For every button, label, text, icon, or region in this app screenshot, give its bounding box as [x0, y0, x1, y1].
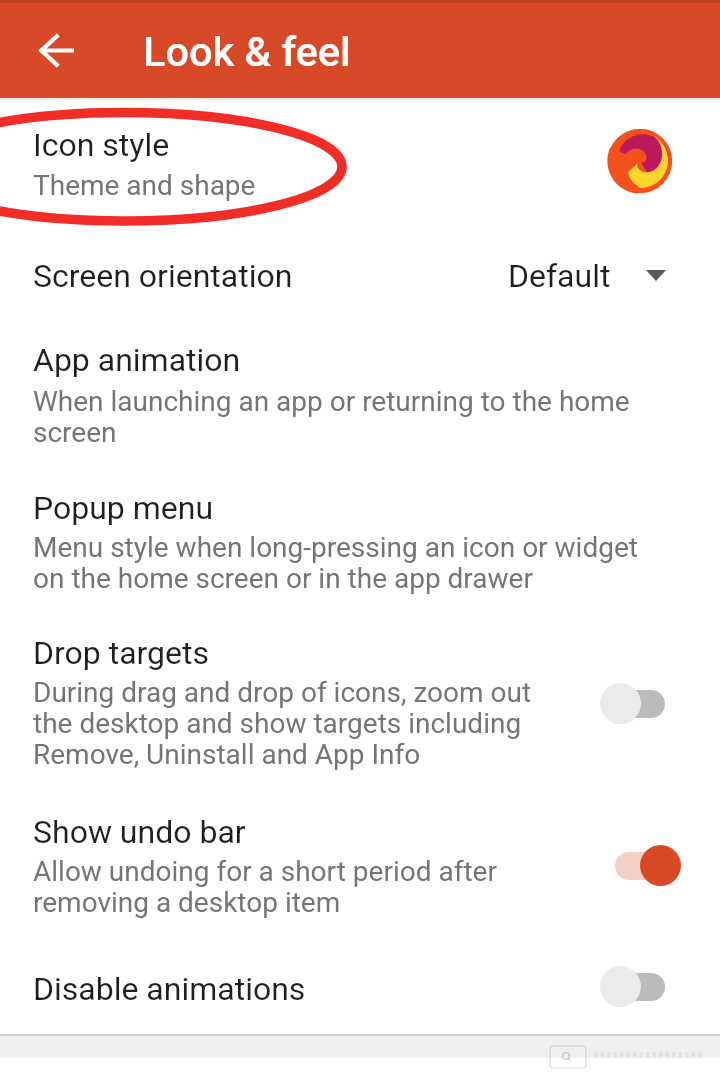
button[interactable]: Toggle, off	[593, 950, 689, 1018]
staticText: During drag and drop of icons, zoom out …	[33, 677, 573, 770]
staticText: Popup menu	[33, 489, 214, 527]
button[interactable]: Popup menu	[0, 472, 720, 617]
staticText: Screen orientation	[33, 257, 293, 295]
button[interactable]: Toggle, on	[593, 829, 689, 897]
staticText: App animation	[33, 341, 241, 379]
staticText: Menu style when long-pressing an icon or…	[33, 532, 643, 594]
button[interactable]: Disable animations	[0, 943, 720, 1033]
staticText: When launching an app or returning to th…	[33, 386, 633, 448]
staticText: Drop targets	[33, 634, 210, 672]
staticText: Theme and shape	[33, 170, 256, 201]
button[interactable]: Show undo bar	[0, 795, 720, 943]
staticText: Look & feel	[143, 27, 351, 76]
button[interactable]: Screen orientation	[0, 228, 720, 324]
staticText: Allow undoing for a short period after r…	[33, 856, 533, 918]
button[interactable]: Back	[24, 18, 88, 82]
button[interactable]: Icon style	[0, 100, 720, 228]
staticText: Default	[508, 257, 611, 295]
staticText: Show undo bar	[33, 813, 246, 851]
staticText: Icon style	[33, 126, 170, 164]
button[interactable]: Toggle, off	[593, 667, 689, 735]
button[interactable]: App animation	[0, 324, 720, 472]
staticText: Disable animations	[33, 970, 306, 1008]
button[interactable]: Drop targets	[0, 617, 720, 795]
